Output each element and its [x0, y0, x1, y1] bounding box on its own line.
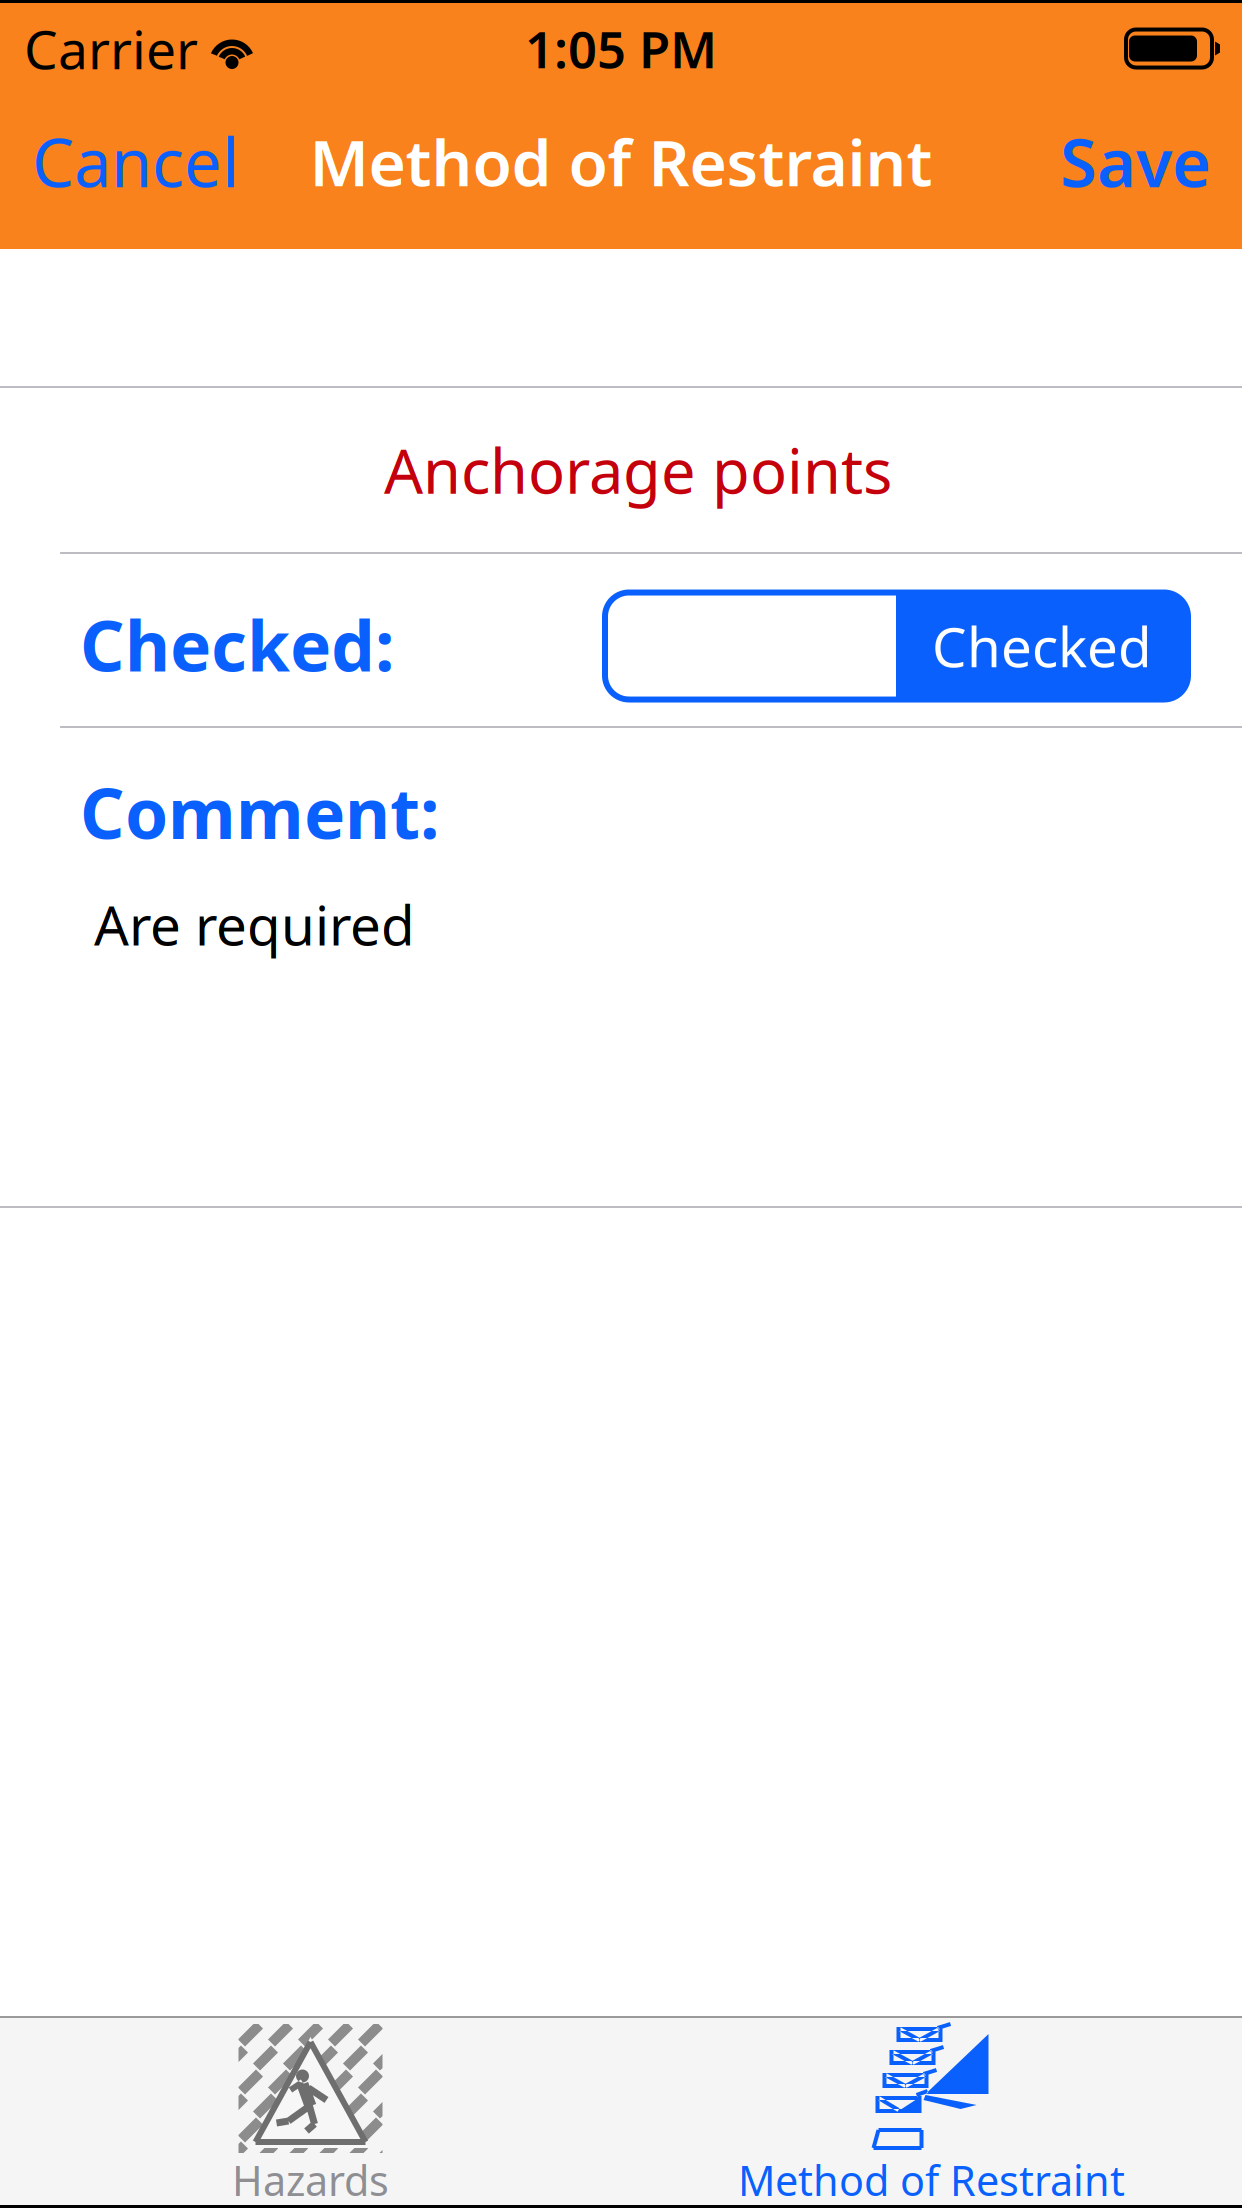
button[interactable]: Hazards [0, 2018, 621, 2205]
staticText: 1:05 PM [525, 15, 717, 82]
staticText: Checked [932, 610, 1152, 682]
button[interactable]: Method of Restraint [621, 2018, 1242, 2205]
button[interactable]: Checked [605, 592, 1188, 699]
staticText: Carrier [24, 13, 198, 84]
staticText: Method of Restraint [738, 2153, 1125, 2207]
staticText: Anchorage points [384, 429, 892, 511]
staticText: Checked: [80, 598, 394, 691]
staticText: Method of Restraint [309, 119, 932, 204]
button[interactable]: Cancel [22, 103, 249, 220]
button[interactable]: Comment: [0, 728, 1242, 1206]
staticText: Are required [94, 888, 415, 961]
staticText: Cancel [32, 117, 239, 206]
staticText: Save [1060, 117, 1211, 206]
button[interactable]: Save [1050, 103, 1221, 220]
staticText: Hazards [232, 2153, 389, 2207]
staticText: Comment: [80, 766, 439, 858]
